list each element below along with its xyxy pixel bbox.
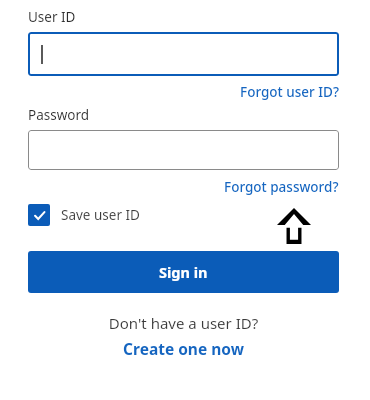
staticText: Forgot password? [224,178,339,196]
staticText: Create one now [123,338,244,359]
button[interactable]: Sign in [28,251,339,293]
button[interactable]: Save user ID [28,204,140,226]
staticText: Forgot user ID? [240,83,339,101]
staticText: User ID [28,8,76,26]
button[interactable] [28,32,339,76]
other: Pointer [277,208,311,244]
staticText: Save user ID [61,206,140,224]
button[interactable] [28,130,339,170]
button[interactable]: Forgot password? [224,178,339,196]
staticText: Don't have a user ID? [28,313,339,333]
button[interactable]: Forgot user ID? [240,83,339,101]
staticText: Password [28,106,90,124]
staticText: Sign in [159,262,208,282]
button[interactable]: Create one now [123,338,244,359]
